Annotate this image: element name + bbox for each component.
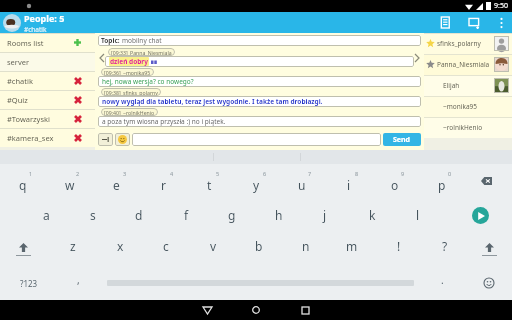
staticText: 4 (170, 170, 174, 177)
staticText: e (113, 177, 120, 193)
button[interactable]: ?123 (0, 266, 58, 300)
staticText: sfinks_polarny (437, 39, 481, 48)
button[interactable]: n (283, 232, 329, 266)
staticText: h (275, 207, 283, 223)
button[interactable]: 5 (186, 164, 232, 198)
staticText: t (207, 177, 212, 193)
button[interactable]: Backspace (466, 164, 506, 198)
staticText: 0 (448, 170, 452, 177)
button[interactable]: 3 (93, 164, 139, 198)
staticText: [09:38] (104, 89, 121, 96)
button[interactable]: dzień dobry (105, 56, 414, 67)
button[interactable]: Space (100, 266, 420, 300)
button[interactable]: Home (239, 300, 273, 320)
staticText: 6 (263, 170, 267, 177)
button[interactable]: h (256, 198, 302, 232)
staticText: #Towarzyski (7, 114, 50, 124)
staticText: #chatik (7, 76, 33, 86)
button[interactable]: 0 (419, 164, 465, 198)
button[interactable]: Rooms (430, 12, 460, 33)
button[interactable]: More options (490, 12, 512, 33)
staticText: b (255, 238, 263, 254)
button[interactable]: 2 (47, 164, 93, 198)
button[interactable]: Send (455, 198, 505, 232)
staticText: a poza tym wiosna przyszła :) no i piąte… (102, 117, 226, 126)
staticText: m (346, 238, 358, 254)
button[interactable]: Add room (460, 12, 490, 33)
button[interactable]: Emoji (466, 266, 512, 300)
button[interactable]: x (97, 232, 143, 266)
staticText: Send (393, 135, 411, 145)
staticText: u (298, 177, 306, 193)
button[interactable]: . (422, 266, 462, 300)
button[interactable]: s (70, 198, 116, 232)
button[interactable]: Tab (98, 133, 113, 146)
button[interactable]: m (329, 232, 375, 266)
staticText: ?123 (20, 278, 38, 289)
staticText: 8 (355, 170, 359, 177)
button[interactable]: z (50, 232, 96, 266)
button[interactable]: #Towarzyski (0, 109, 95, 128)
button[interactable]: a (23, 198, 69, 232)
staticText: 9:50 (494, 1, 508, 11)
button[interactable]: ~monika95 (424, 96, 512, 117)
staticText: 5 (216, 170, 220, 177)
staticText: d (135, 207, 143, 223)
button[interactable]: Topic: (98, 35, 421, 46)
staticText: sfinks_polarny (123, 89, 158, 96)
button[interactable]: #kamera_sex (0, 128, 95, 147)
button[interactable]: Shift (466, 232, 512, 266)
staticText: [09:36] (104, 69, 121, 76)
staticText: [09:40] (104, 109, 121, 116)
button[interactable]: Recent apps (288, 300, 322, 320)
button[interactable]: 8 (326, 164, 372, 198)
button[interactable]: Emoji (115, 133, 130, 146)
button[interactable]: sfinks_polarny (424, 33, 512, 54)
button[interactable]: l (395, 198, 441, 232)
button[interactable]: , (58, 266, 98, 300)
button[interactable]: 9 (372, 164, 418, 198)
button[interactable]: b (236, 232, 282, 266)
button[interactable]: 6 (233, 164, 279, 198)
button[interactable]: Next (413, 50, 421, 66)
button[interactable]: j (302, 198, 348, 232)
button[interactable]: nowy wygląd dla tabletu, teraz jest wygo… (98, 96, 421, 107)
button[interactable]: 1 (0, 164, 46, 198)
button[interactable]: d (116, 198, 162, 232)
button[interactable]: ~rolnikHenio (424, 117, 512, 138)
staticText: y (253, 177, 260, 193)
staticText: 9 (401, 170, 405, 177)
button[interactable]: k (349, 198, 395, 232)
button[interactable]: ? (422, 232, 468, 266)
staticText: x (117, 238, 124, 254)
button[interactable]: #chatik (0, 71, 95, 90)
button[interactable]: v (190, 232, 236, 266)
button[interactable]: Back (190, 300, 224, 320)
button[interactable]: Previous (98, 50, 106, 66)
button[interactable]: Shift (0, 232, 46, 266)
button[interactable]: App icon (3, 14, 21, 32)
button[interactable]: 7 (279, 164, 325, 198)
staticText: p (438, 177, 446, 193)
button[interactable]: server (0, 52, 95, 71)
button[interactable]: f (163, 198, 209, 232)
button[interactable]: ! (376, 232, 422, 266)
staticText: k (369, 207, 376, 223)
staticText: ~rolnikHenio (443, 123, 483, 132)
button[interactable]: g (209, 198, 255, 232)
button[interactable]: Panna_Niesmiala (424, 54, 512, 75)
button[interactable]: c (143, 232, 189, 266)
staticText: ~monika95 (443, 102, 477, 111)
staticText: People: 5 (24, 12, 65, 24)
button[interactable]: #Quiz (0, 90, 95, 109)
button[interactable]: Elijah (424, 75, 512, 96)
button[interactable]: a poza tym wiosna przyszła :) no i piąte… (98, 116, 421, 127)
staticText: c (163, 238, 169, 254)
button[interactable]: Message input (132, 133, 381, 146)
button[interactable]: Rooms list (0, 33, 95, 52)
staticText: ? (442, 238, 448, 254)
button[interactable]: Send (383, 133, 421, 146)
button[interactable]: 4 (140, 164, 186, 198)
button[interactable]: hej, nowa wersja? co nowego? (98, 76, 421, 87)
staticText: server (7, 57, 30, 67)
